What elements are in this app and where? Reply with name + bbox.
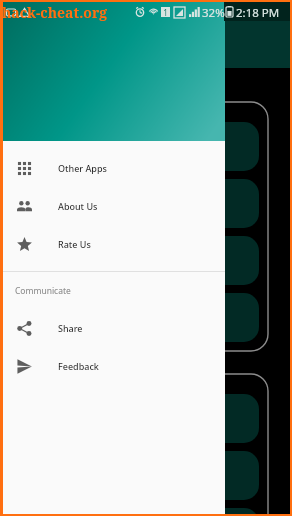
staticText: Rate Us <box>58 238 91 250</box>
button[interactable]: List item 3 <box>22 508 259 514</box>
staticText: hack-cheat.org <box>3 3 108 22</box>
staticText: Other Apps <box>58 162 107 174</box>
button[interactable]: Share <box>3 309 225 347</box>
button[interactable]: Rate Us <box>3 225 225 263</box>
button[interactable]: List item 4 <box>22 293 259 342</box>
staticText: Feedback <box>58 360 99 372</box>
staticText: Communicate <box>15 285 71 297</box>
button[interactable]: Other Apps <box>3 149 225 187</box>
button[interactable]: List item 1 <box>22 394 259 443</box>
button[interactable]: List item 2 <box>22 179 259 228</box>
button[interactable]: List item 1 <box>22 122 259 171</box>
button[interactable]: List item 2 <box>22 451 259 500</box>
staticText: Share <box>58 322 83 334</box>
button[interactable]: Feedback <box>3 347 225 385</box>
staticText: 1 <box>163 7 168 17</box>
button[interactable]: Close navigation drawer <box>225 2 290 514</box>
staticText: 2:18 PM <box>236 5 280 21</box>
button[interactable]: About Us <box>3 187 225 225</box>
staticText: 32% <box>202 5 225 21</box>
button[interactable]: List item 3 <box>22 236 259 285</box>
staticText: About Us <box>58 200 98 212</box>
